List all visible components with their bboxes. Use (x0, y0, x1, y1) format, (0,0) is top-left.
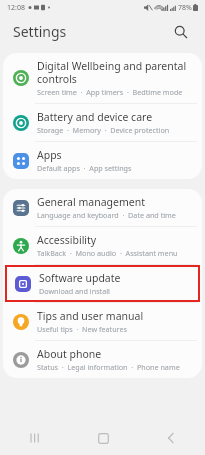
button[interactable]: Search (168, 19, 194, 45)
button[interactable]: Recent apps (0, 421, 69, 455)
button[interactable]: Accessibility (3, 227, 202, 264)
staticText: Status · Legal information · Phone name (37, 362, 180, 372)
staticText: Accessibility (37, 233, 97, 247)
staticText: General management (37, 195, 145, 209)
button[interactable]: Software update (5, 265, 200, 302)
staticText: About phone (37, 347, 102, 361)
button[interactable]: Home (69, 421, 137, 455)
staticText: Useful tips · New features (37, 324, 127, 334)
staticText: Digital Wellbeing and parental controls (37, 59, 187, 86)
staticText: Battery and device care (37, 110, 153, 124)
staticText: Screen time · App timers · Bedtime mode (37, 87, 183, 97)
button[interactable]: Back (137, 421, 205, 455)
staticText: 78% (178, 3, 192, 13)
staticText: Language and keyboard · Date and time (37, 210, 176, 220)
button[interactable]: General management (3, 189, 202, 226)
button[interactable]: Apps (3, 142, 202, 179)
staticText: Tips and user manual (37, 309, 144, 323)
staticText: Download and install (39, 286, 110, 296)
button[interactable]: Digital Wellbeing and parental controls (3, 53, 202, 103)
staticText: Storage · Memory · Device protection (37, 125, 170, 135)
staticText: Default apps · App settings (37, 163, 132, 173)
staticText: Software update (39, 271, 121, 285)
staticText: 12:08 (7, 3, 25, 13)
staticText: Settings (13, 22, 67, 41)
button[interactable]: About phone (3, 341, 202, 378)
button[interactable]: Tips and user manual (3, 303, 202, 340)
button[interactable]: Battery and device care (3, 104, 202, 141)
staticText: TalkBack · Mono audio · Assistant menu (37, 248, 178, 258)
staticText: Apps (37, 148, 62, 162)
